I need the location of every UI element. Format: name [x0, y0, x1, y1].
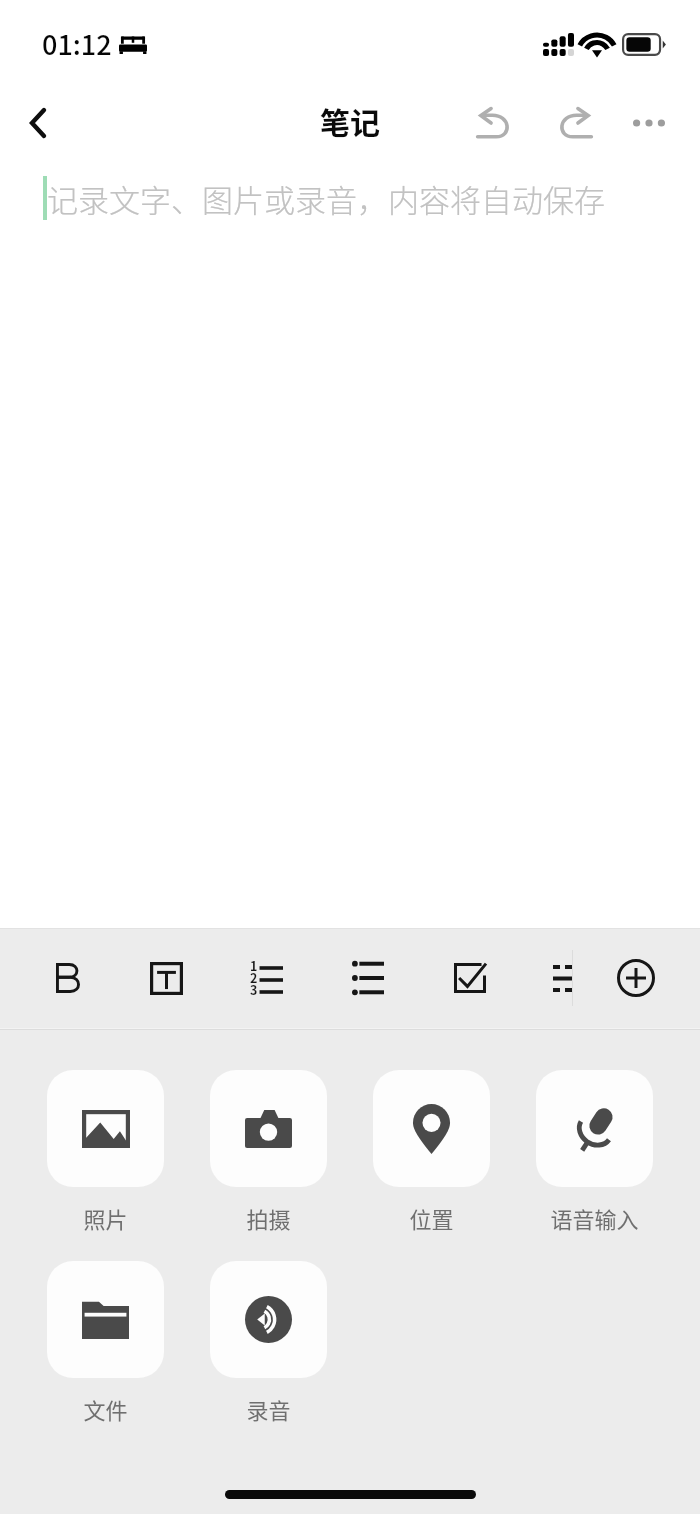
button[interactable]: Divider — [528, 944, 596, 1012]
button[interactable]: 录音 — [210, 1261, 327, 1425]
staticText: 笔记 — [320, 99, 380, 142]
button[interactable]: Redo — [544, 91, 608, 155]
staticText: 照片 — [83, 1202, 128, 1234]
staticText: 录音 — [246, 1393, 291, 1425]
button[interactable]: Bulleted list — [334, 944, 402, 1012]
button[interactable]: Numbered list — [232, 944, 300, 1012]
staticText: 语音输入 — [550, 1202, 639, 1234]
button[interactable]: Checklist — [436, 944, 504, 1012]
button[interactable]: Back — [6, 91, 70, 155]
staticText: 文件 — [83, 1393, 128, 1425]
staticText: 01:12 — [42, 24, 112, 63]
button[interactable]: 照片 — [47, 1070, 164, 1234]
button[interactable]: 语音输入 — [536, 1070, 653, 1234]
button[interactable]: 位置 — [373, 1070, 490, 1234]
button[interactable]: More options — [617, 91, 681, 155]
button[interactable]: 拍摄 — [210, 1070, 327, 1234]
staticText: 拍摄 — [246, 1202, 291, 1234]
staticText: 位置 — [409, 1202, 454, 1234]
button[interactable]: Add — [602, 944, 670, 1012]
button[interactable]: Undo — [461, 91, 525, 155]
staticText: 3 — [250, 980, 258, 998]
button[interactable]: Text style — [132, 944, 200, 1012]
button[interactable]: Bold — [33, 944, 101, 1012]
button[interactable]: 文件 — [47, 1261, 164, 1425]
staticText: 2 — [250, 968, 258, 986]
staticText: 1 — [250, 956, 258, 974]
staticText: 记录文字、图片或录音，内容将自动保存 — [47, 176, 605, 221]
